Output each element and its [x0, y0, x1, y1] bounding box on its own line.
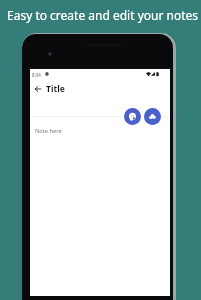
button[interactable]: Change colour [124, 108, 141, 125]
staticText: 8:34 [32, 72, 41, 78]
staticText: Note here [35, 127, 62, 135]
staticText: Title [46, 83, 65, 95]
button[interactable]: Save to cloud [144, 108, 161, 125]
button[interactable]: Back [31, 82, 44, 95]
staticText: Easy to create and edit your notes [7, 7, 199, 23]
